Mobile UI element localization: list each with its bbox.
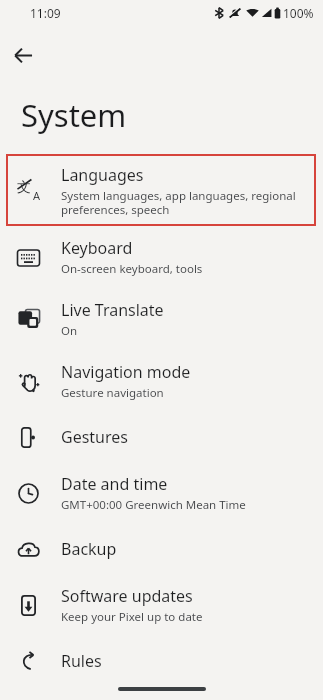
staticText: System <box>21 94 127 136</box>
button[interactable]: Keyboard <box>0 226 323 288</box>
staticText: Backup <box>61 538 117 560</box>
staticText: Date and time <box>61 473 168 495</box>
button[interactable]: Backup <box>0 524 323 574</box>
staticText: Live Translate <box>61 299 164 321</box>
staticText: GMT+00:00 Greenwich Mean Time <box>61 497 246 513</box>
staticText: Gestures <box>61 426 128 448</box>
staticText: Software updates <box>61 585 193 607</box>
button[interactable]: 文 <box>6 154 316 226</box>
staticText: Languages <box>61 164 144 186</box>
button[interactable]: Live Translate <box>0 288 323 350</box>
staticText: Navigation mode <box>61 361 191 383</box>
button[interactable]: Software updates <box>0 574 323 636</box>
button[interactable]: Gestures <box>0 412 323 462</box>
staticText: Keep your Pixel up to date <box>61 609 203 625</box>
button[interactable]: Navigation mode <box>0 350 323 412</box>
button[interactable]: Date and time <box>0 462 323 524</box>
staticText: Rules <box>61 650 102 672</box>
staticText: On <box>61 323 78 339</box>
staticText: Keyboard <box>61 237 133 259</box>
button[interactable]: Back <box>6 38 40 72</box>
staticText: Gesture navigation <box>61 385 164 401</box>
staticText: System languages, app languages, regiona… <box>61 188 296 217</box>
staticText: 100% <box>283 5 314 21</box>
staticText: 文 <box>17 179 31 197</box>
button[interactable]: Rules <box>0 636 323 686</box>
staticText: A <box>33 188 41 203</box>
staticText: 11:09 <box>30 5 61 21</box>
staticText: On-screen keyboard, tools <box>61 261 203 277</box>
